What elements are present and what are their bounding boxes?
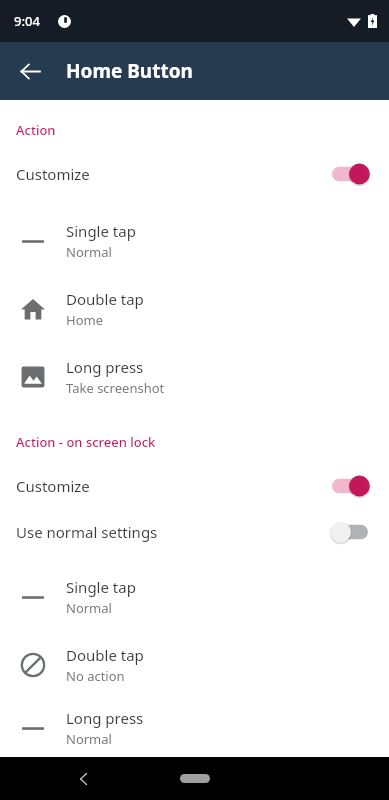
- staticText: Single tap: [66, 577, 136, 597]
- staticText: Long press: [66, 708, 144, 728]
- staticText: Normal: [66, 599, 112, 617]
- staticText: Customize: [16, 476, 327, 496]
- button[interactable]: Use normal settings: [0, 509, 389, 555]
- staticText: Take screenshot: [66, 379, 165, 397]
- staticText: Double tap: [66, 645, 144, 665]
- button[interactable]: Single tap: [0, 207, 389, 275]
- staticText: Home: [66, 311, 103, 329]
- staticText: Long press: [66, 357, 144, 377]
- staticText: Single tap: [66, 221, 136, 241]
- button[interactable]: Customize: [0, 151, 389, 197]
- staticText: Action - on screen lock: [16, 433, 156, 451]
- button[interactable]: Customize: [0, 463, 389, 509]
- button[interactable]: Double tap: [0, 631, 389, 699]
- staticText: Double tap: [66, 289, 144, 309]
- button[interactable]: Back: [64, 759, 104, 799]
- button[interactable]: Back: [8, 49, 52, 93]
- staticText: 9:04: [14, 12, 40, 30]
- staticText: Home Button: [66, 58, 193, 84]
- staticText: Action: [16, 121, 56, 139]
- button[interactable]: Home: [180, 774, 210, 783]
- staticText: Normal: [66, 730, 112, 748]
- button[interactable]: Long press: [0, 343, 389, 411]
- staticText: No action: [66, 667, 125, 685]
- staticText: Normal: [66, 243, 112, 261]
- button[interactable]: Long press: [0, 699, 389, 757]
- button[interactable]: Double tap: [0, 275, 389, 343]
- staticText: Customize: [16, 164, 327, 184]
- button[interactable]: Single tap: [0, 563, 389, 631]
- staticText: Use normal settings: [16, 522, 327, 542]
